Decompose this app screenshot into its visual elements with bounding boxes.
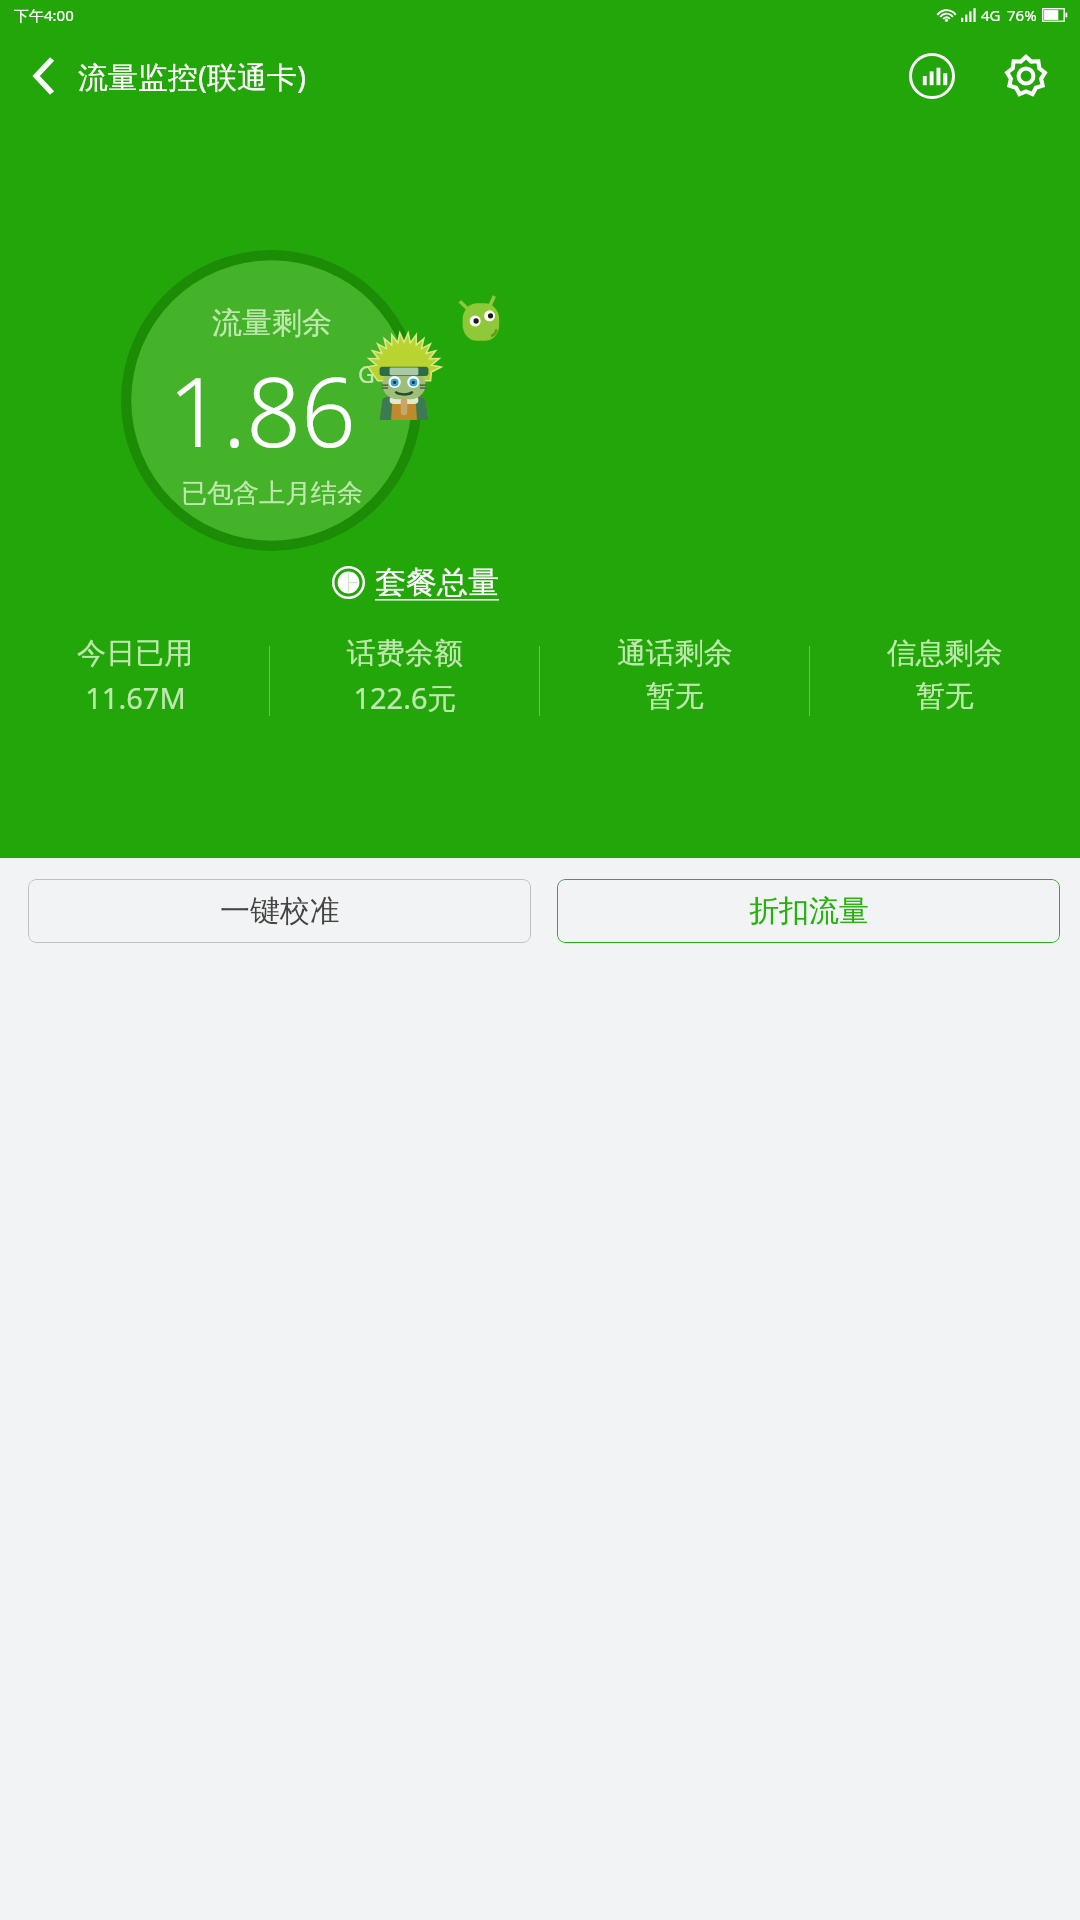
staticText: 套餐总量 [375, 563, 499, 602]
staticText: 信息剩余 [887, 635, 1003, 672]
staticText: 下午4:00 [14, 5, 74, 25]
staticText: 1.86 [168, 344, 356, 475]
staticText: 话费余额 [347, 635, 463, 672]
staticText: G [358, 358, 375, 389]
staticText: 4G [981, 5, 1001, 25]
button[interactable]: Back [16, 47, 74, 105]
button[interactable]: Settings [994, 44, 1058, 108]
button[interactable]: Statistics [900, 44, 964, 108]
button[interactable]: 一键校准 [28, 879, 531, 943]
staticText: 通话剩余 [617, 635, 733, 672]
staticText: 流量剩余 [212, 304, 332, 342]
staticText: 已包含上月结余 [181, 477, 363, 510]
staticText: 流量监控(联通卡) [78, 56, 306, 97]
button[interactable]: 套餐总量 [332, 563, 499, 602]
staticText: 11.67M [85, 678, 186, 717]
staticText: 今日已用 [77, 635, 193, 672]
staticText: 122.6元 [353, 678, 457, 718]
staticText: 暂无 [916, 678, 974, 715]
staticText: 一键校准 [220, 892, 340, 930]
button[interactable]: 折扣流量 [557, 879, 1060, 943]
staticText: 折扣流量 [749, 892, 869, 930]
staticText: 76% [1007, 5, 1037, 25]
staticText: 暂无 [646, 678, 704, 715]
button[interactable]: 流量剩余 [121, 250, 422, 551]
